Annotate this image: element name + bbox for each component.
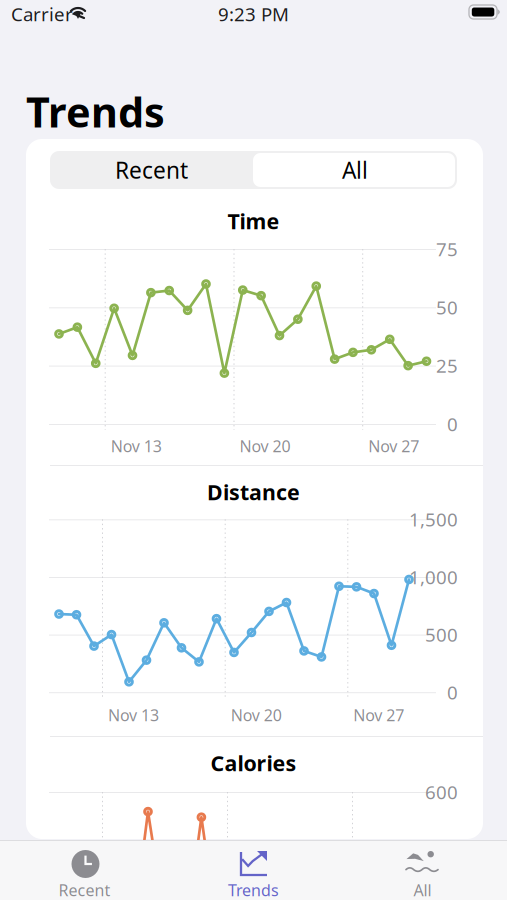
staticText: 75 bbox=[436, 237, 458, 261]
staticText: Time bbox=[227, 207, 279, 235]
button[interactable]: All bbox=[338, 840, 507, 900]
staticText: Recent bbox=[58, 879, 110, 900]
staticText: All bbox=[413, 879, 431, 900]
staticText: 25 bbox=[436, 353, 458, 378]
staticText: 1,000 bbox=[409, 565, 458, 589]
staticText: 9:23 PM bbox=[218, 2, 289, 26]
button[interactable]: Recent bbox=[0, 840, 169, 900]
button[interactable]: Trends bbox=[169, 840, 338, 900]
staticText: Nov 13 bbox=[111, 435, 162, 457]
staticText: 500 bbox=[425, 622, 458, 647]
staticText: 0 bbox=[447, 680, 458, 705]
staticText: Recent bbox=[115, 155, 188, 185]
staticText: Carrier bbox=[11, 2, 73, 26]
staticText: All bbox=[342, 155, 368, 185]
staticText: Nov 27 bbox=[368, 435, 419, 457]
staticText: Trends bbox=[26, 84, 165, 139]
staticText: Calories bbox=[210, 749, 296, 777]
button[interactable]: All bbox=[253, 151, 457, 189]
staticText: Nov 20 bbox=[239, 435, 290, 457]
staticText: 50 bbox=[436, 295, 458, 320]
staticText: 1,500 bbox=[409, 507, 458, 532]
staticText: Nov 20 bbox=[231, 704, 282, 726]
staticText: Nov 27 bbox=[353, 704, 404, 726]
staticText: Nov 13 bbox=[108, 704, 159, 726]
button[interactable]: Recent bbox=[50, 151, 253, 189]
staticText: Trends bbox=[228, 879, 279, 900]
staticText: Distance bbox=[207, 478, 300, 506]
staticText: 600 bbox=[425, 780, 458, 804]
staticText: 0 bbox=[447, 412, 458, 436]
